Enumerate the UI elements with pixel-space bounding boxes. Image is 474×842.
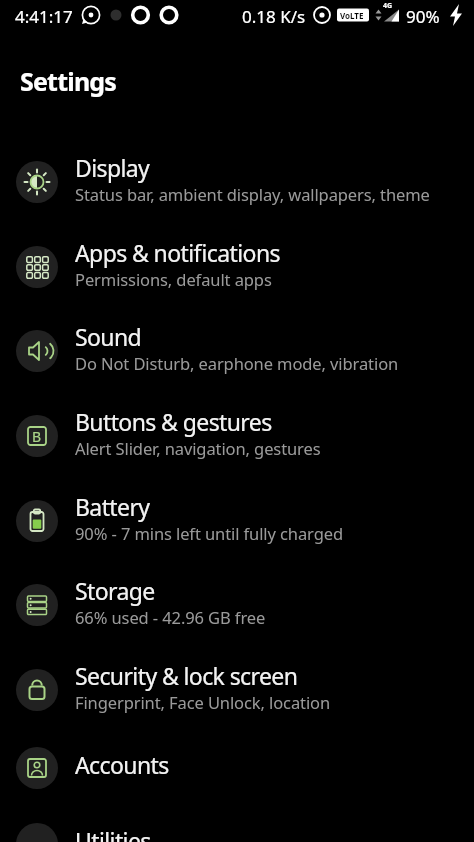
button[interactable]: Sound (0, 308, 474, 393)
button[interactable]: Battery (0, 478, 474, 563)
button[interactable]: Display (0, 139, 474, 224)
staticText: 66% used - 42.96 GB free (75, 606, 266, 628)
staticText: Status bar, ambient display, wallpapers,… (75, 183, 430, 205)
staticText: Storage (75, 575, 155, 606)
staticText: Fingerprint, Face Unlock, location (75, 691, 331, 713)
staticText: 90% - 7 mins left until fully charged (75, 522, 343, 544)
staticText: 4:41:17 (15, 5, 73, 28)
staticText: Alert Slider, navigation, gestures (75, 437, 321, 459)
staticText: VoLTE (340, 10, 364, 21)
button[interactable]: Utilities (0, 801, 474, 842)
button[interactable]: Security & lock screen (0, 647, 474, 732)
button[interactable]: Apps & notifications (0, 224, 474, 309)
button[interactable]: Storage (0, 562, 474, 647)
staticText: 4G (383, 1, 393, 11)
staticText: Buttons & gestures (75, 406, 272, 437)
staticText: 0.18 K/s (242, 5, 306, 28)
staticText: Do Not Disturb, earphone mode, vibration (75, 352, 399, 374)
staticText: Security & lock screen (75, 660, 298, 691)
staticText: Sound (75, 321, 142, 352)
staticText: Permissions, default apps (75, 268, 272, 290)
button[interactable]: Accounts (0, 725, 474, 810)
staticText: Battery (75, 491, 150, 522)
staticText: Accounts (75, 749, 169, 780)
staticText: Settings (20, 64, 117, 98)
staticText: 90% (406, 5, 440, 28)
staticText: Utilities (75, 825, 151, 842)
staticText: Display (75, 152, 150, 183)
staticText: B (32, 427, 42, 446)
button[interactable]: B (0, 393, 474, 478)
staticText: Apps & notifications (75, 237, 280, 268)
